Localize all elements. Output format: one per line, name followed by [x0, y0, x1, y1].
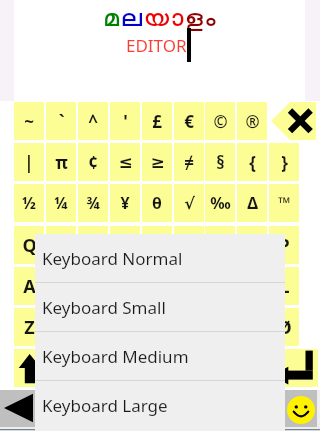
- staticText: R: [119, 233, 131, 258]
- staticText: ®: [245, 110, 260, 133]
- staticText: X: [55, 315, 68, 340]
- button[interactable]: [142, 349, 172, 387]
- button[interactable]: H: [174, 267, 204, 305]
- staticText: Z: [24, 315, 35, 340]
- button[interactable]: [46, 349, 76, 387]
- button[interactable]: |: [14, 143, 44, 181]
- staticText: §: [216, 151, 225, 174]
- staticText: E: [88, 233, 99, 258]
- button[interactable]: Keyboard Medium: [35, 332, 285, 380]
- staticText: ‰: [210, 192, 231, 214]
- button[interactable]: ™: [269, 184, 299, 222]
- staticText: Keyboard Medium: [42, 345, 189, 368]
- staticText: P: [278, 233, 290, 258]
- button[interactable]: ¢: [78, 143, 108, 181]
- button[interactable]: [174, 349, 204, 387]
- button[interactable]: P: [269, 226, 299, 264]
- button[interactable]: ¾: [78, 184, 108, 222]
- button[interactable]: ': [110, 102, 140, 140]
- button[interactable]: ≥: [142, 143, 172, 181]
- button[interactable]: £: [142, 102, 172, 140]
- staticText: M: [212, 315, 229, 340]
- staticText: ¾: [86, 192, 100, 214]
- button[interactable]: ^: [78, 102, 108, 140]
- button[interactable]: J: [205, 267, 235, 305]
- button[interactable]: B: [142, 308, 172, 346]
- staticText: {: [249, 151, 256, 174]
- staticText: £: [152, 110, 162, 133]
- button[interactable]: W: [46, 226, 76, 264]
- staticText: U: [213, 233, 227, 258]
- button[interactable]: U: [205, 226, 235, 264]
- button[interactable]: ~: [14, 102, 44, 140]
- staticText: €: [184, 110, 194, 133]
- button[interactable]: √: [174, 184, 204, 222]
- button[interactable]: V: [110, 308, 140, 346]
- button[interactable]: S: [46, 267, 76, 305]
- button[interactable]: Keyboard Normal: [35, 234, 285, 282]
- button[interactable]: ≠: [174, 143, 204, 181]
- button[interactable]: X: [46, 308, 76, 346]
- button[interactable]: Δ: [237, 184, 267, 222]
- button[interactable]: €: [174, 102, 204, 140]
- staticText: മലയാളം: [104, 7, 218, 31]
- button[interactable]: Z: [14, 308, 44, 346]
- button[interactable]: M: [205, 308, 235, 346]
- button[interactable]: Keyboard Large: [35, 381, 285, 430]
- staticText: B: [151, 315, 163, 340]
- button[interactable]: C: [78, 308, 108, 346]
- staticText: C: [87, 315, 99, 340]
- button[interactable]: G: [142, 267, 172, 305]
- button[interactable]: ;: [237, 308, 267, 346]
- staticText: ^: [88, 110, 98, 133]
- button[interactable]: D: [78, 267, 108, 305]
- button[interactable]: [205, 349, 235, 387]
- button[interactable]: A: [14, 267, 44, 305]
- button[interactable]: Back: [2, 391, 36, 425]
- button[interactable]: Keyboard Small: [35, 283, 285, 331]
- button[interactable]: E: [78, 226, 108, 264]
- staticText: Δ: [247, 192, 258, 214]
- button[interactable]: ¥: [110, 184, 140, 222]
- button[interactable]: Ø: [269, 308, 299, 346]
- button[interactable]: ¼: [46, 184, 76, 222]
- button[interactable]: ‰: [205, 184, 235, 222]
- button[interactable]: F: [110, 267, 140, 305]
- button[interactable]: Shift: [14, 349, 44, 387]
- staticText: J: [217, 274, 223, 299]
- staticText: ≤: [118, 152, 133, 172]
- button[interactable]: π: [46, 143, 76, 181]
- button[interactable]: K: [237, 267, 267, 305]
- button[interactable]: Emoji keyboard: [287, 396, 315, 424]
- staticText: S: [56, 274, 66, 299]
- staticText: Y: [183, 233, 195, 258]
- button[interactable]: θ: [142, 184, 172, 222]
- button[interactable]: ®: [237, 102, 267, 140]
- button[interactable]: R: [110, 226, 140, 264]
- button[interactable]: N: [174, 308, 204, 346]
- button[interactable]: Y: [174, 226, 204, 264]
- staticText: Keyboard Small: [42, 296, 166, 319]
- button[interactable]: }: [269, 143, 299, 181]
- staticText: √: [184, 194, 195, 213]
- button[interactable]: [78, 349, 108, 387]
- button[interactable]: T: [142, 226, 172, 264]
- button[interactable]: ≤: [110, 143, 140, 181]
- staticText: EDITOR: [126, 34, 187, 57]
- button[interactable]: I: [237, 226, 267, 264]
- button[interactable]: `: [46, 102, 76, 140]
- button[interactable]: ©: [205, 102, 235, 140]
- button[interactable]: Q: [14, 226, 44, 264]
- button[interactable]: Backspace: [271, 102, 316, 140]
- staticText: ½: [22, 192, 36, 214]
- button[interactable]: L: [269, 267, 299, 305]
- staticText: H: [182, 274, 196, 299]
- staticText: ¼: [54, 192, 68, 214]
- button[interactable]: Enter: [237, 349, 318, 387]
- staticText: I: [248, 233, 256, 258]
- button[interactable]: §: [205, 143, 235, 181]
- button[interactable]: ½: [14, 184, 44, 222]
- staticText: ~: [24, 110, 34, 133]
- button[interactable]: {: [237, 143, 267, 181]
- button[interactable]: [110, 349, 140, 387]
